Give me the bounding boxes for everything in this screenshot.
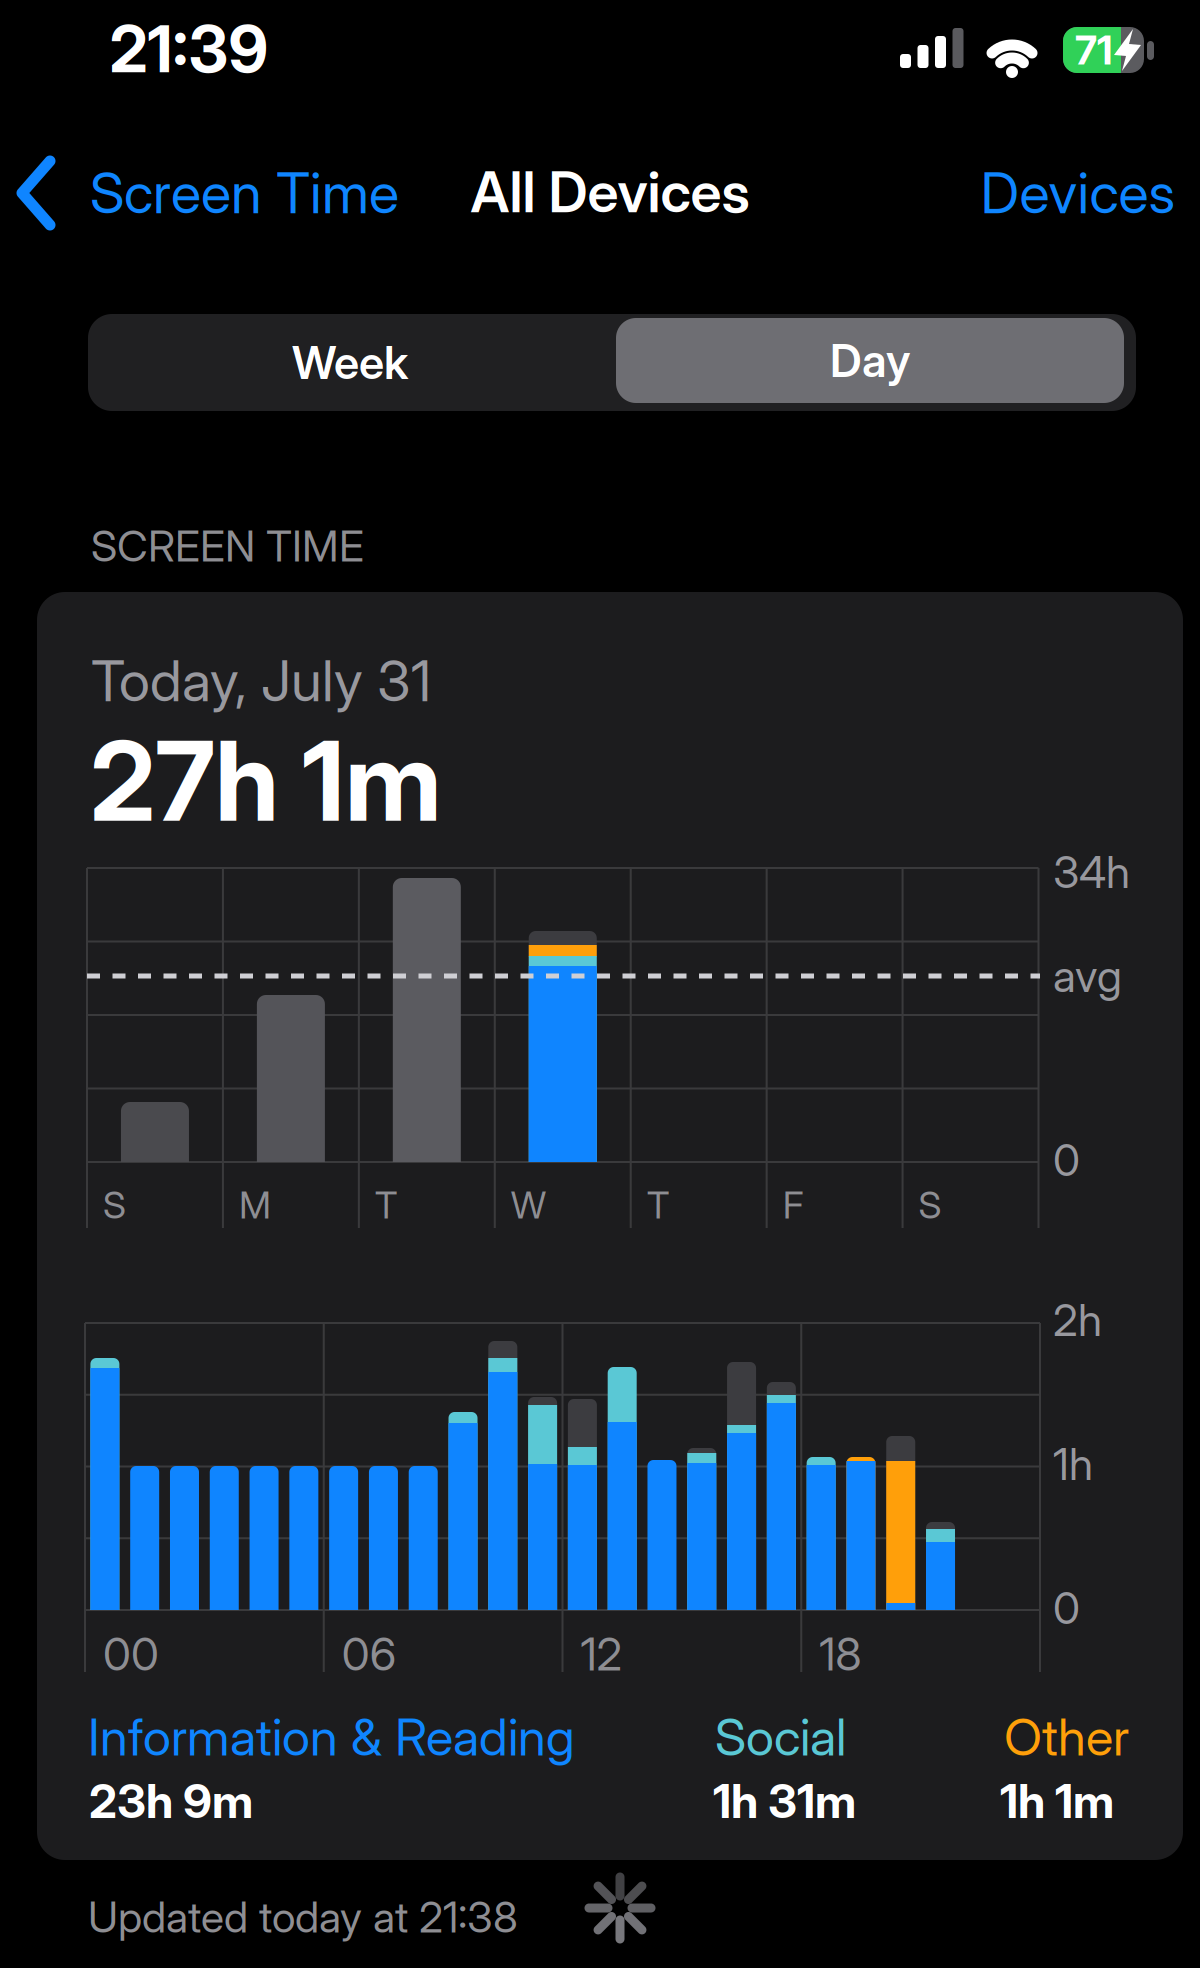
staticText: 27h 1m (90, 716, 442, 845)
staticText: 1h 1m (1000, 1773, 1114, 1829)
staticText: T (647, 1183, 670, 1227)
staticText: M (239, 1183, 271, 1227)
staticText: T (375, 1183, 398, 1227)
button[interactable]: Devices (980, 160, 1175, 226)
staticText: Today, July 31 (91, 648, 431, 714)
staticText: 23h 9m (89, 1773, 253, 1829)
staticText: 0 (1053, 1134, 1080, 1186)
staticText: 06 (342, 1627, 396, 1681)
staticText: S (919, 1183, 942, 1227)
staticText: SCREEN TIME (91, 521, 364, 571)
staticText: Week (292, 336, 408, 389)
staticText: 1h (1053, 1438, 1093, 1490)
staticText: Other (1004, 1707, 1129, 1767)
staticText: Updated today at 21:38 (88, 1892, 518, 1942)
staticText: 00 (103, 1627, 159, 1681)
staticText: 1h 31m (713, 1773, 856, 1829)
staticText: All Devices (470, 159, 749, 225)
staticText: S (103, 1183, 126, 1227)
staticText: 0 (1053, 1582, 1080, 1634)
staticText: 34h (1053, 846, 1130, 898)
staticText: Screen Time (90, 160, 399, 226)
staticText: avg (1053, 950, 1122, 1002)
staticText: Devices (980, 160, 1175, 226)
staticText: 18 (819, 1627, 861, 1681)
staticText: W (511, 1183, 546, 1227)
staticText: Information & Reading (88, 1707, 575, 1767)
button[interactable]: Day (616, 318, 1124, 403)
staticText: 2h (1053, 1294, 1102, 1346)
staticText: Social (715, 1707, 846, 1767)
staticText: 71 (1075, 26, 1113, 74)
button[interactable]: Screen Time (16, 156, 399, 230)
staticText: F (783, 1183, 804, 1227)
staticText: 21:39 (109, 11, 268, 87)
staticText: 12 (580, 1627, 621, 1681)
staticText: Day (830, 334, 910, 387)
button[interactable]: Week (88, 314, 612, 411)
